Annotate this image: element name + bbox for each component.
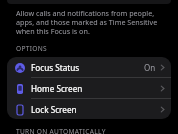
staticText: On xyxy=(144,62,156,73)
other: Home Screen xyxy=(17,84,23,94)
button[interactable]: Home Screen xyxy=(7,78,171,98)
staticText: Allow calls and notifications from peopl… xyxy=(16,8,168,36)
other: Lock Screen xyxy=(17,105,23,115)
staticText: OPTIONS xyxy=(16,44,47,53)
staticText: Home Screen xyxy=(31,83,83,94)
other: Focus Status xyxy=(15,63,25,73)
staticText: TURN ON AUTOMATICALLY xyxy=(16,127,106,134)
button[interactable]: Focus Status xyxy=(7,57,171,77)
staticText: Focus Status xyxy=(31,62,80,73)
button[interactable]: Lock Screen xyxy=(7,99,171,119)
staticText: Lock Screen xyxy=(31,104,77,115)
